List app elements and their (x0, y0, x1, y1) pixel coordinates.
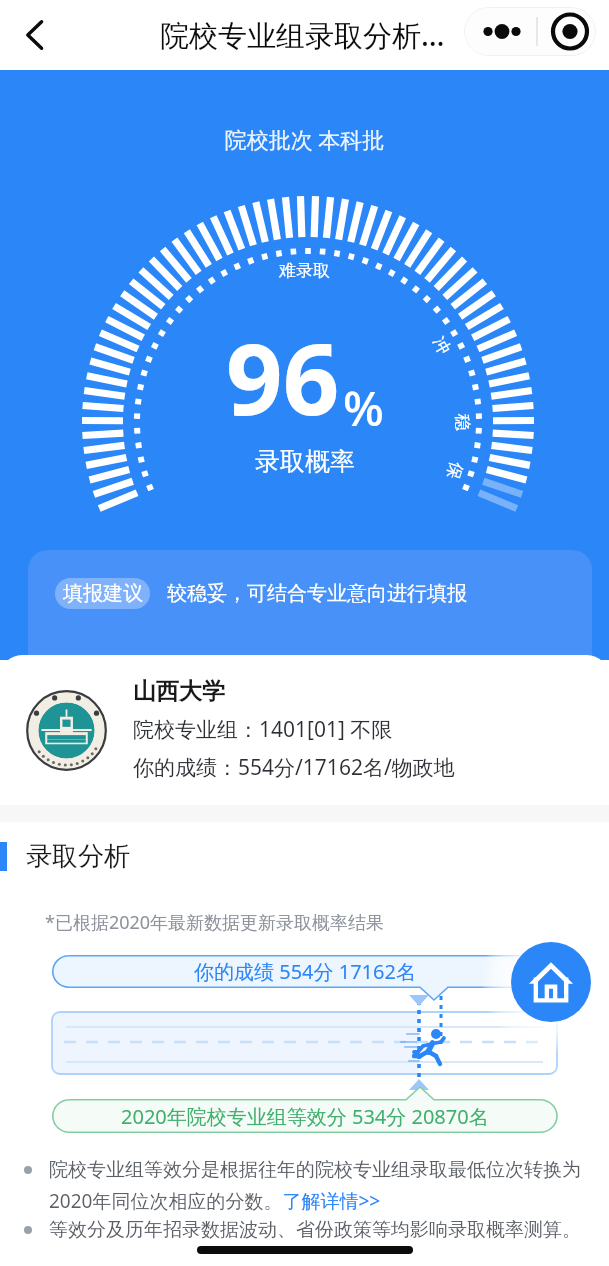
staticText: 冲 (428, 333, 455, 358)
staticText: 录取概率 (255, 446, 355, 477)
staticText: 填报建议 (63, 581, 143, 606)
staticText: 等效分及历年招录数据波动、省份政策等均影响录取概率测算。 (49, 1218, 581, 1242)
button[interactable]: 填报建议 (28, 550, 592, 660)
staticText: 96 (226, 309, 340, 444)
staticText: 难录取 (279, 260, 330, 281)
staticText: 院校专业组：1401[01] 不限 (133, 715, 393, 744)
staticText: 院校专业组等效分是根据往年的院校专业组录取最低位次转换为2020年同位次相应的分… (49, 1158, 581, 1213)
staticText: 院校批次 本科批 (0, 124, 609, 154)
staticText: 院校专业组录取分析… (160, 15, 445, 55)
staticText: 稳 (452, 414, 473, 431)
staticText: 山西大学 (133, 677, 225, 706)
staticText: 你的成绩：554分/17162名/物政地 (133, 753, 455, 782)
staticText: 你的成绩 554分 17162名 (194, 958, 416, 985)
staticText: 保 (442, 459, 467, 482)
button[interactable]: Back (9, 9, 61, 61)
staticText: 较稳妥，可结合专业意向进行填报 (167, 581, 467, 606)
staticText: 录取分析 (26, 840, 130, 873)
button[interactable]: 山西大学 (0, 655, 609, 805)
staticText: % (343, 375, 384, 440)
button[interactable]: Home (511, 942, 591, 1022)
staticText: *已根据2020年最新数据更新录取概率结果 (45, 910, 385, 935)
button[interactable]: More options (464, 7, 596, 56)
staticText: 2020年院校专业组等效分 534分 20870名 (121, 1103, 489, 1130)
